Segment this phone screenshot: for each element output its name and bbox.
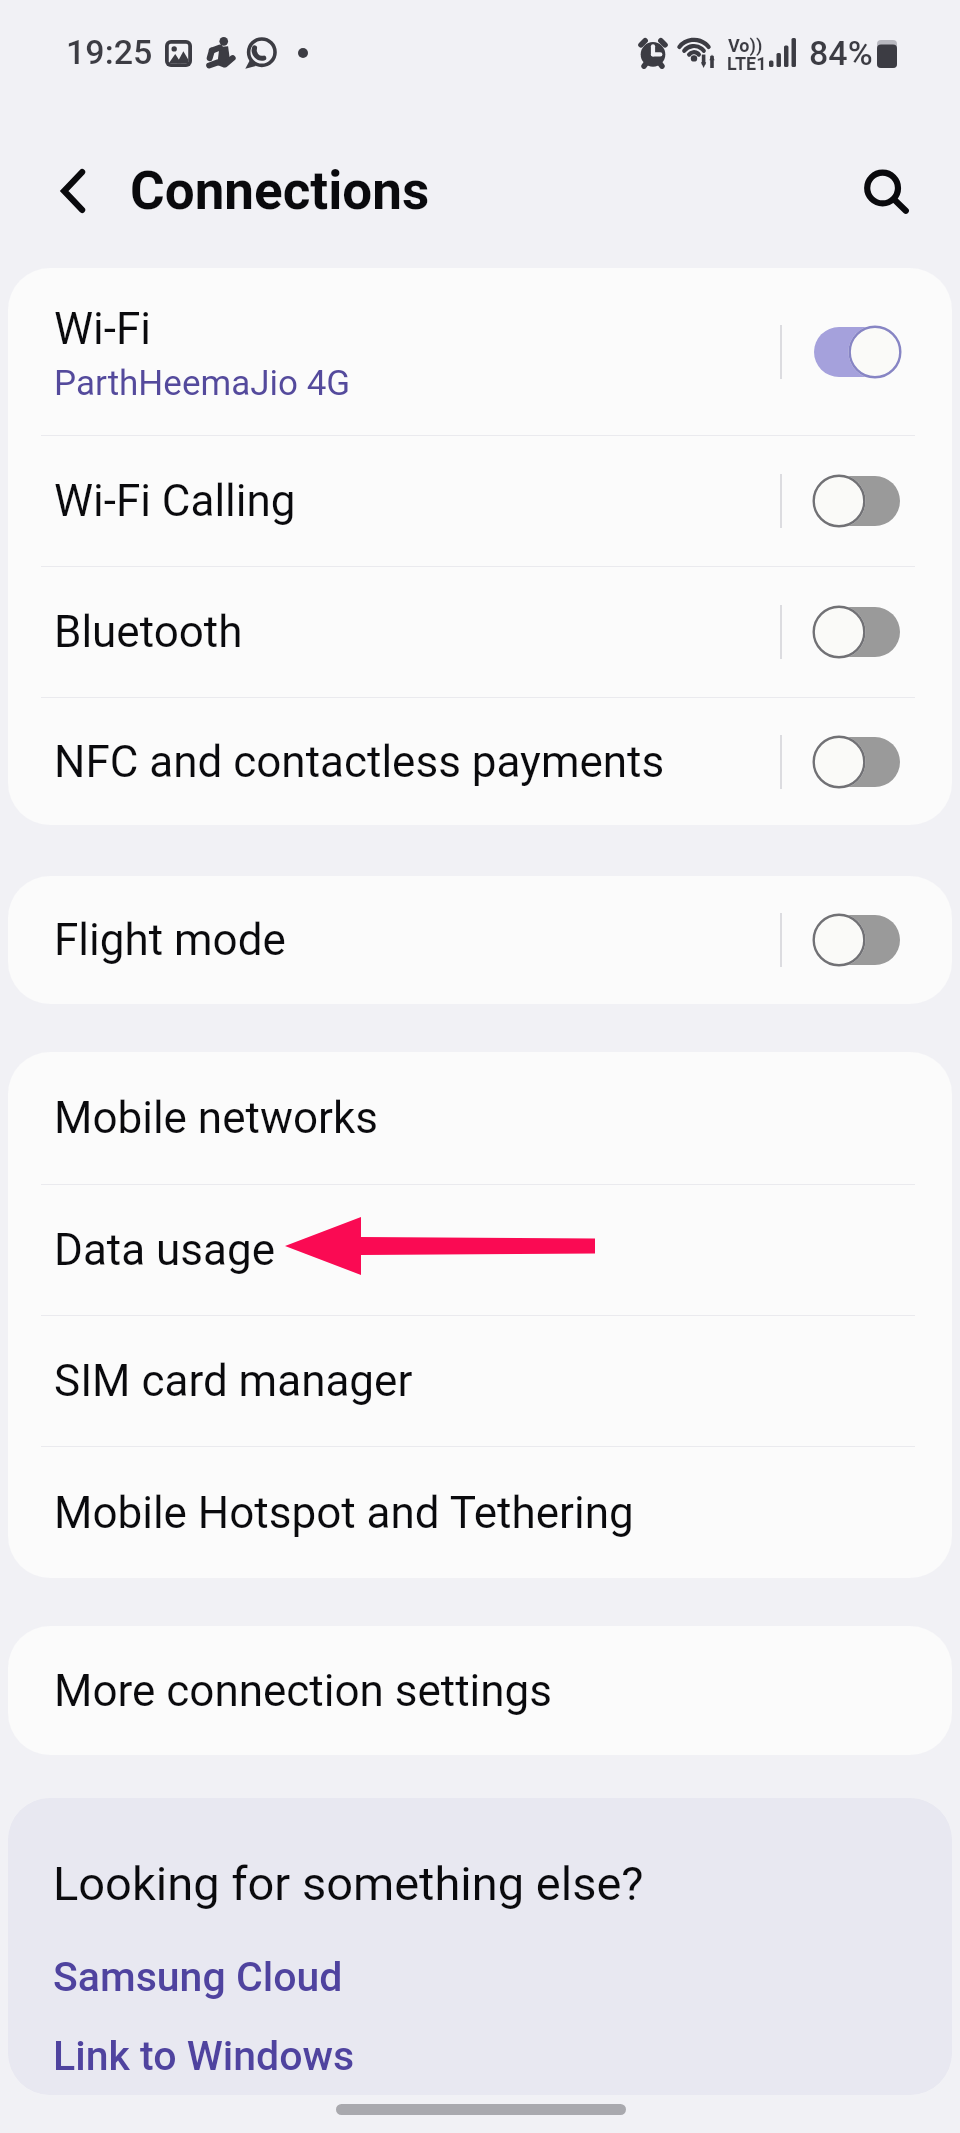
- button[interactable]: Wi-Fi: [8, 268, 952, 435]
- button[interactable]: Mobile Hotspot and Tethering: [8, 1447, 952, 1578]
- button[interactable]: Wi-Fi Calling: [8, 436, 952, 566]
- button[interactable]: Link to Windows: [53, 2032, 355, 2080]
- button[interactable]: Toggle NFC and contactless payments: [782, 698, 952, 825]
- button[interactable]: Bluetooth: [8, 567, 952, 697]
- button[interactable]: Toggle Flight mode: [782, 876, 952, 1004]
- staticText: Bluetooth: [54, 606, 243, 658]
- staticText: Mobile networks: [54, 1092, 378, 1144]
- button[interactable]: More connection settings: [8, 1626, 952, 1755]
- button[interactable]: Search: [845, 150, 929, 234]
- staticText: Wi-Fi: [54, 303, 151, 355]
- button[interactable]: Flight mode: [8, 876, 952, 1004]
- staticText: ParthHeemaJio 4G: [54, 363, 351, 404]
- button[interactable]: Toggle Wi-Fi: [782, 268, 952, 435]
- button[interactable]: Toggle Wi-Fi Calling: [782, 436, 952, 566]
- staticText: Connections: [130, 160, 430, 222]
- staticText: 84%: [809, 33, 873, 73]
- staticText: Vo)): [728, 35, 763, 56]
- staticText: Wi-Fi Calling: [54, 475, 296, 527]
- staticText: SIM card manager: [54, 1355, 413, 1407]
- staticText: Mobile Hotspot and Tethering: [54, 1487, 634, 1539]
- staticText: Flight mode: [54, 914, 286, 966]
- button[interactable]: Back: [30, 148, 116, 234]
- button[interactable]: Samsung Cloud: [53, 1953, 343, 2001]
- button[interactable]: NFC and contactless payments: [8, 698, 952, 825]
- staticText: LTE1: [727, 53, 767, 74]
- staticText: Data usage: [54, 1224, 275, 1276]
- button[interactable]: SIM card manager: [8, 1316, 952, 1446]
- button[interactable]: Data usage: [8, 1185, 952, 1315]
- button[interactable]: Mobile networks: [8, 1052, 952, 1184]
- staticText: Looking for something else?: [53, 1856, 644, 1911]
- staticText: 19:25: [66, 32, 153, 72]
- button[interactable]: Toggle Bluetooth: [782, 567, 952, 697]
- staticText: More connection settings: [54, 1665, 552, 1717]
- staticText: NFC and contactless payments: [54, 736, 665, 788]
